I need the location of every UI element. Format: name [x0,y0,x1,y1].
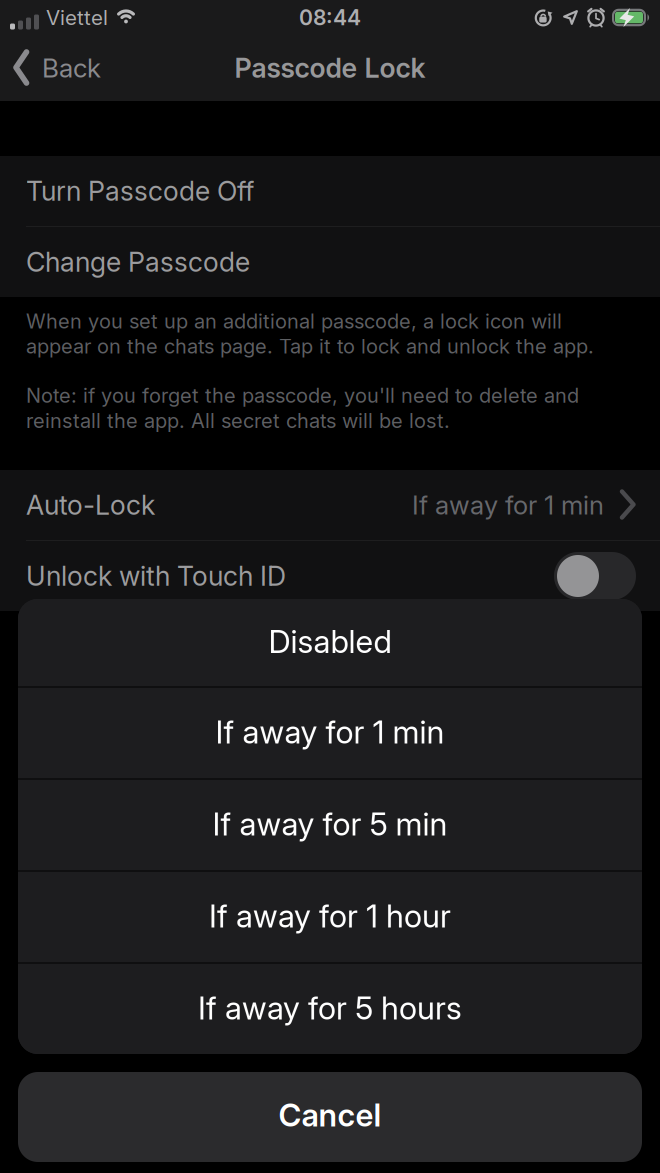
button[interactable]: If away for 5 hours [18,964,642,1054]
staticText: If away for 5 hours [198,989,462,1027]
button[interactable]: If away for 1 min [18,688,642,778]
staticText: Viettel [46,5,108,30]
staticText: If away for 1 min [215,713,444,751]
staticText: Auto-Lock [26,489,155,521]
staticText: Turn Passcode Off [26,175,254,207]
button[interactable]: Disabled [18,599,642,686]
button[interactable]: If away for 5 min [18,780,642,870]
staticText: If away for 5 min [212,805,447,843]
staticText: Unlock with Touch ID [26,560,286,592]
staticText: When you set up an additional passcode, … [26,309,594,358]
button[interactable]: Auto-Lock [0,470,660,540]
button[interactable]: Change Passcode [0,227,660,297]
button[interactable]: Cancel [0,1072,660,1162]
staticText: 08:44 [299,5,361,30]
button[interactable]: Back [0,52,101,84]
staticText: If away for 1 min [412,489,604,521]
staticText: If away for 1 hour [209,897,451,935]
button[interactable]: Unlock with Touch ID [0,541,660,611]
staticText: Cancel [278,1096,381,1134]
staticText: Passcode Lock [234,52,425,84]
button[interactable]: If away for 1 hour [18,872,642,962]
staticText: Disabled [268,622,391,660]
button[interactable]: Turn Passcode Off [0,156,660,226]
staticText: Change Passcode [26,246,250,278]
staticText: Back [42,52,101,84]
staticText: Note: if you forget the passcode, you'll… [26,383,579,433]
